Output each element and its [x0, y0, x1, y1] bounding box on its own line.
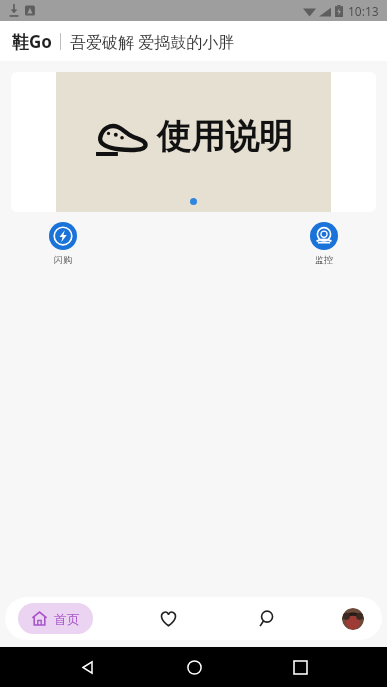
other: 闪购 — [52, 225, 74, 247]
staticText: 使用说明 — [157, 115, 293, 158]
staticText: 监控 — [315, 254, 333, 265]
staticText: 鞋Go — [12, 30, 52, 53]
button[interactable]: 闪购 — [26, 220, 100, 267]
staticText: 首页 — [54, 611, 80, 627]
button[interactable]: Home — [174, 647, 214, 687]
button[interactable]: 搜索 — [244, 597, 288, 640]
button[interactable]: 使用说明 — [11, 72, 376, 212]
button[interactable]: 我的 — [342, 608, 364, 630]
button[interactable]: 收藏 — [146, 597, 190, 640]
staticText: 10:13 — [348, 3, 379, 19]
button[interactable]: Back — [67, 647, 107, 687]
button[interactable]: 首页 — [18, 603, 93, 634]
staticText: 闪购 — [54, 254, 72, 265]
button[interactable]: Recents — [280, 647, 320, 687]
button[interactable]: 监控 — [287, 220, 361, 267]
other: 监控 — [313, 225, 335, 247]
staticText: 吾爱破解 爱捣鼓的小胖 — [70, 31, 235, 53]
